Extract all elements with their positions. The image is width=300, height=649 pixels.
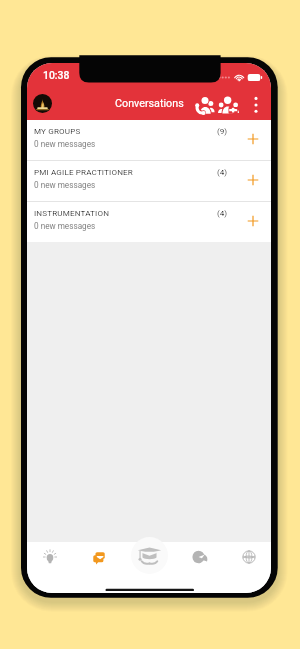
button[interactable]: Add group — [243, 211, 263, 231]
button[interactable]: Add group — [243, 170, 263, 190]
button[interactable]: Learning — [131, 537, 168, 574]
button[interactable]: MY GROUPS — [27, 120, 271, 160]
staticText: Conversations — [115, 97, 184, 110]
staticText: 0 new messages — [34, 180, 96, 190]
button[interactable]: Add contact — [218, 95, 239, 115]
button[interactable]: Profile — [33, 94, 52, 113]
staticText: INSTRUMENTATION — [34, 208, 110, 217]
staticText: 0 new messages — [34, 221, 96, 231]
staticText: 0 new messages — [34, 139, 96, 149]
staticText: (4) — [217, 208, 228, 217]
staticText: (9) — [217, 126, 228, 135]
button[interactable]: INSTRUMENTATION — [27, 202, 271, 242]
button[interactable]: Call contacts — [195, 95, 215, 115]
button[interactable]: Ideas — [39, 546, 61, 568]
staticText: PMI AGILE PRACTITIONER — [34, 167, 133, 176]
staticText: 10:38 — [43, 69, 70, 81]
button[interactable]: Reports — [188, 546, 210, 568]
staticText: (4) — [217, 167, 228, 176]
button[interactable]: Add group — [243, 129, 263, 149]
staticText: MY GROUPS — [34, 126, 81, 135]
button[interactable]: More options — [246, 91, 266, 111]
button[interactable]: Web — [238, 546, 260, 568]
button[interactable]: Messages — [88, 546, 110, 568]
button[interactable]: PMI AGILE PRACTITIONER — [27, 161, 271, 201]
